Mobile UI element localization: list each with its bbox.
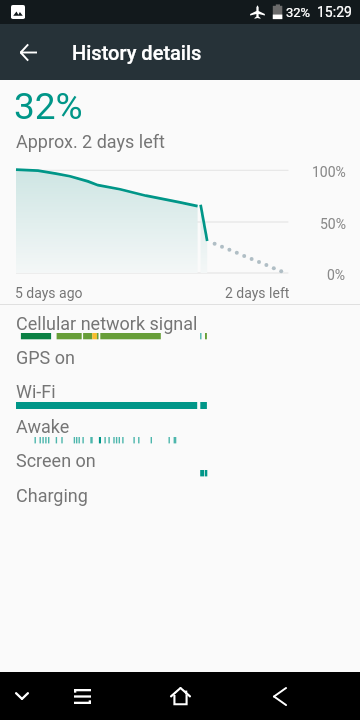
staticText: Cellular network signal xyxy=(16,313,198,334)
staticText: 50% xyxy=(320,216,346,232)
staticText: Wi-Fi xyxy=(16,381,56,402)
staticText: Screen on xyxy=(16,450,96,471)
staticText: 0% xyxy=(327,267,346,283)
button[interactable]: Navigate up xyxy=(0,24,56,80)
staticText: GPS on xyxy=(16,347,75,368)
staticText: 5 days ago xyxy=(15,285,83,301)
button[interactable]: Back xyxy=(256,672,304,720)
staticText: 2 days left xyxy=(225,285,290,301)
staticText: 32% xyxy=(286,5,311,20)
staticText: 32% xyxy=(14,85,83,128)
staticText: Awake xyxy=(16,416,70,437)
staticText: Charging xyxy=(16,485,88,506)
staticText: 100% xyxy=(312,164,346,180)
staticText: Approx. 2 days left xyxy=(16,131,165,152)
button[interactable]: Hide keyboard xyxy=(0,672,46,720)
button[interactable]: Home xyxy=(156,672,204,720)
button[interactable]: Recent apps xyxy=(58,672,106,720)
staticText: 15:29 xyxy=(317,4,352,20)
staticText: History details xyxy=(72,41,202,64)
